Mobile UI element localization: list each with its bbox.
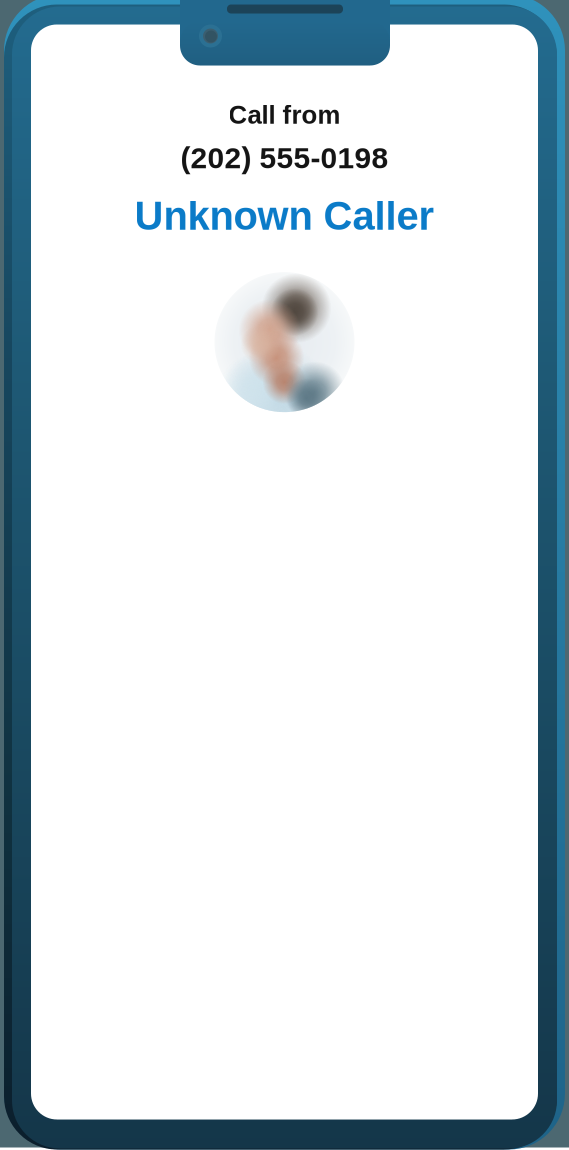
staticText: Unknown Caller bbox=[134, 194, 434, 238]
staticText: Call from bbox=[228, 100, 340, 129]
staticText: (202) 555-0198 bbox=[180, 141, 388, 175]
